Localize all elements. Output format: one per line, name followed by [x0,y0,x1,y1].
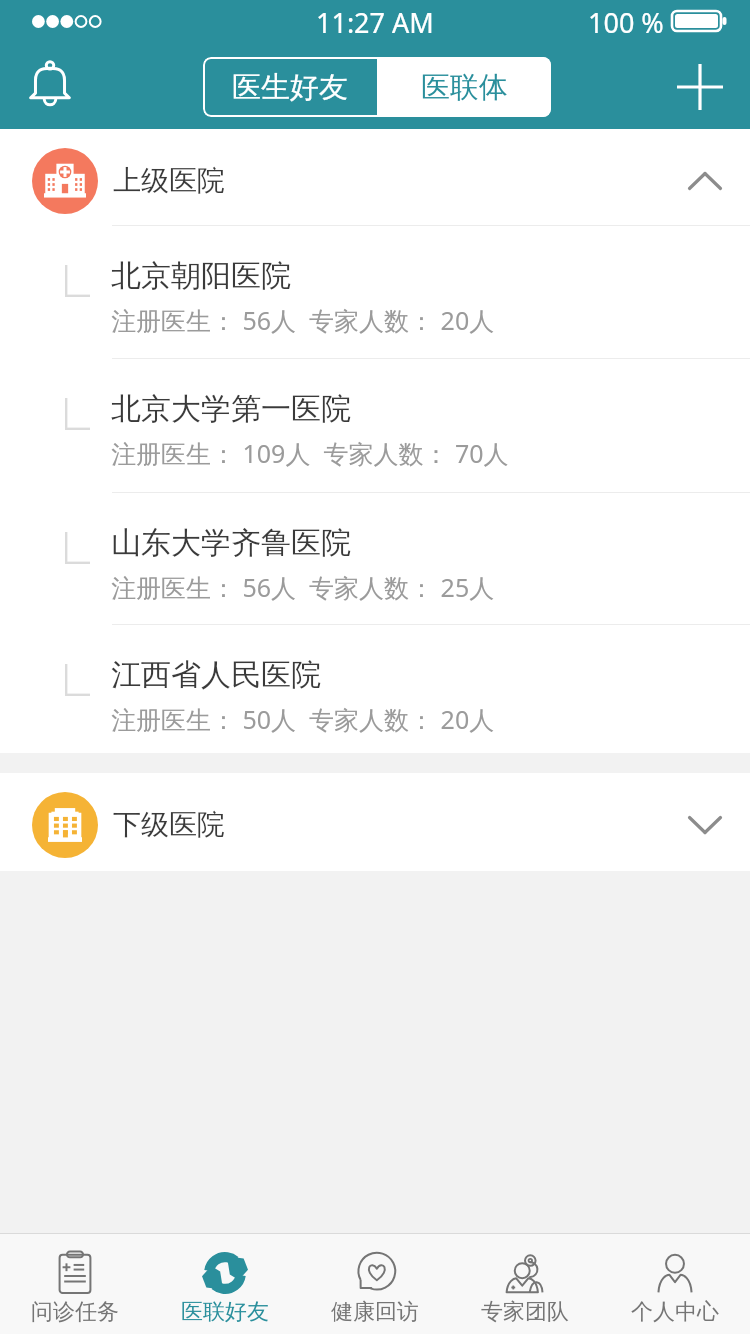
staticText: 北京朝阳医院 [111,257,291,295]
button[interactable]: 江西省人民医院 [0,625,750,753]
button[interactable]: 健康回访 [300,1234,450,1334]
staticText: 问诊任务 [31,1298,119,1326]
staticText: 医联体 [421,69,508,106]
staticText: 专家团队 [481,1298,569,1326]
button[interactable]: 下级医院 [0,773,750,871]
button[interactable]: 北京朝阳医院 [0,226,750,358]
button[interactable]: 专家团队 [450,1234,600,1334]
staticText: 山东大学齐鲁医院 [111,524,351,562]
staticText: 注册医生： 109人 专家人数： 70人 [111,436,509,470]
button[interactable]: 山东大学齐鲁医院 [0,493,750,624]
staticText: 注册医生： 56人 专家人数： 20人 [111,303,495,337]
staticText: 11:27 AM [316,4,434,41]
staticText: 上级医院 [113,163,225,198]
button[interactable]: 医生好友 [203,57,377,117]
staticText: 注册医生： 50人 专家人数： 20人 [111,702,495,736]
button[interactable]: Add [666,53,734,121]
staticText: 注册医生： 56人 专家人数： 25人 [111,570,495,604]
button[interactable]: 上级医院 [0,129,750,225]
staticText: 医联好友 [181,1298,269,1326]
staticText: 个人中心 [631,1298,719,1326]
button[interactable]: 医联好友 [150,1234,300,1334]
staticText: 100 % [588,4,664,41]
button[interactable]: 北京大学第一医院 [0,359,750,492]
button[interactable]: 问诊任务 [0,1234,150,1334]
button[interactable]: Notifications [16,50,84,118]
staticText: 健康回访 [331,1298,419,1326]
staticText: 江西省人民医院 [111,656,321,694]
staticText: 下级医院 [113,807,225,842]
staticText: 医生好友 [232,69,348,106]
button[interactable]: 医联体 [377,57,551,117]
button[interactable]: 个人中心 [600,1234,750,1334]
staticText: 北京大学第一医院 [111,390,351,428]
